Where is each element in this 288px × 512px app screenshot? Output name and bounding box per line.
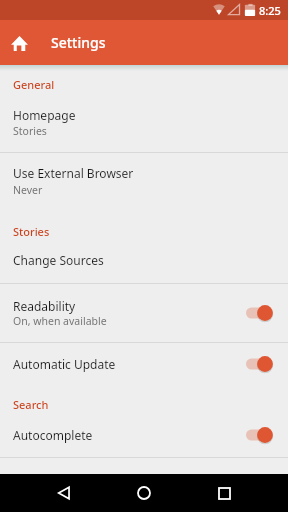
button[interactable]: Home <box>129 478 159 508</box>
staticText: Use External Browser <box>13 165 134 181</box>
button[interactable]: Homepage <box>0 107 288 138</box>
staticText: Stories <box>13 224 50 239</box>
staticText: Readability <box>13 298 76 314</box>
button[interactable]: Use External Browser <box>0 165 288 197</box>
staticText: Automatic Update <box>13 356 116 372</box>
staticText: 8:25 <box>259 3 281 18</box>
staticText: On, when available <box>13 314 107 328</box>
staticText: Search <box>13 397 49 412</box>
button[interactable]: Recents <box>209 478 239 508</box>
staticText: Change Sources <box>13 252 104 268</box>
button[interactable]: Home <box>3 27 35 59</box>
button[interactable]: Readability <box>0 298 288 328</box>
staticText: Settings <box>51 33 106 52</box>
button[interactable]: Automatic Update <box>0 356 288 372</box>
button[interactable]: Autocomplete <box>0 427 288 443</box>
button[interactable]: Back <box>49 478 79 508</box>
staticText: Never <box>13 183 43 197</box>
staticText: Stories <box>13 124 47 138</box>
button[interactable]: Change Sources <box>0 252 288 268</box>
staticText: Autocomplete <box>13 427 93 443</box>
staticText: General <box>13 77 55 92</box>
staticText: Homepage <box>13 107 76 123</box>
